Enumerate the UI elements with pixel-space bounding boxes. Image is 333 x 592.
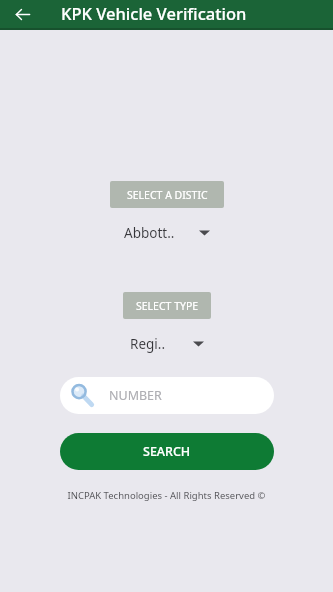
staticText: SELECT A DISTIC xyxy=(127,188,208,202)
button[interactable]: Regi.. xyxy=(130,332,204,356)
button[interactable]: SELECT A DISTIC xyxy=(110,181,224,208)
staticText: Regi.. xyxy=(130,335,193,353)
staticText: NUMBER xyxy=(109,387,162,404)
button[interactable]: Back xyxy=(10,2,34,26)
button[interactable]: SEARCH xyxy=(60,433,274,470)
button[interactable]: Abbott.. xyxy=(124,221,210,245)
staticText: SEARCH xyxy=(143,443,191,460)
staticText: INCPAK Technologies - All Rights Reserve… xyxy=(0,489,333,502)
staticText: Abbott.. xyxy=(124,224,199,242)
button[interactable]: SELECT TYPE xyxy=(123,292,211,319)
staticText: SELECT TYPE xyxy=(136,299,199,313)
button[interactable]: NUMBER xyxy=(60,377,274,414)
staticText: KPK Vehicle Verification xyxy=(61,2,247,24)
